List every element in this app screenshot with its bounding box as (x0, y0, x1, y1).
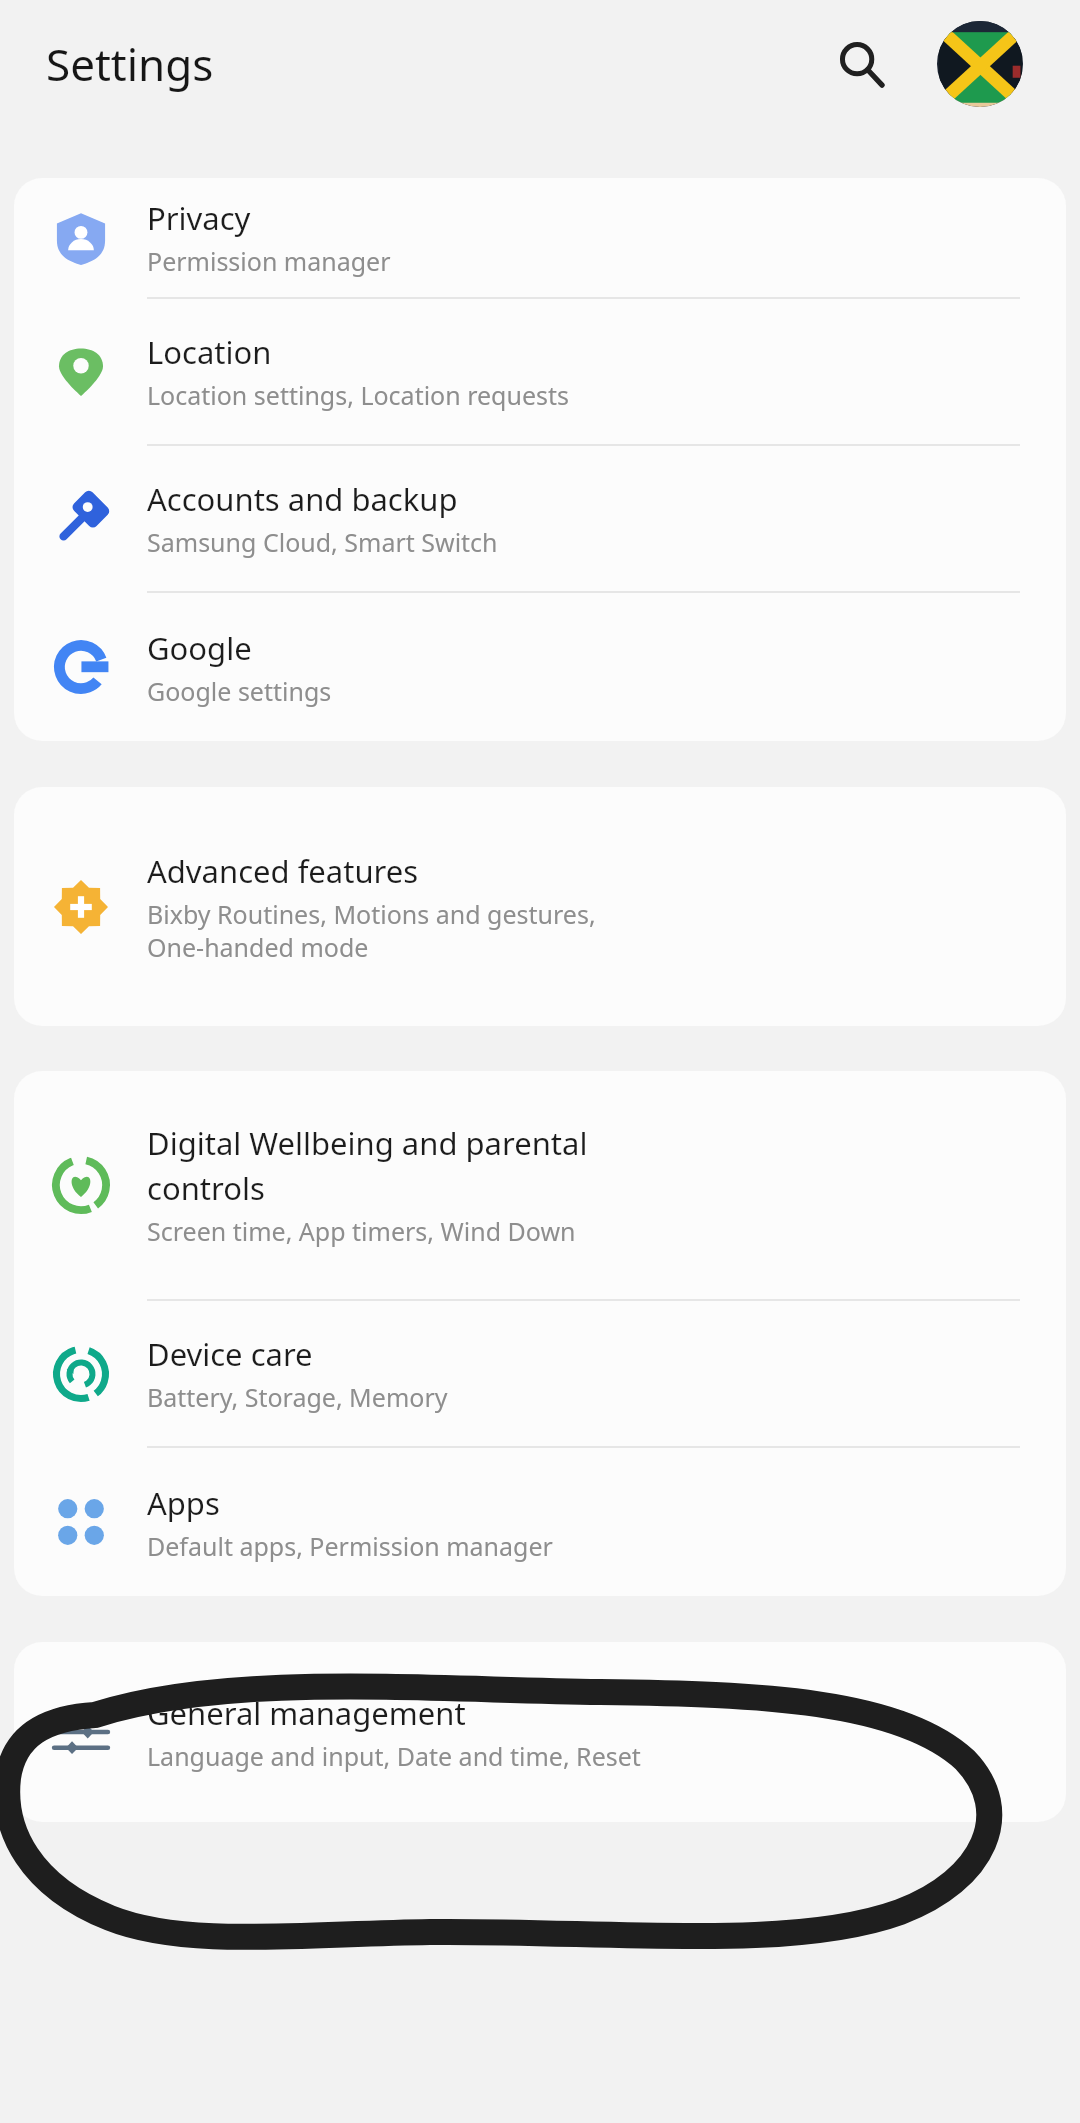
staticText: General management (147, 1692, 466, 1734)
staticText: Apps (147, 1482, 220, 1524)
staticText: Google (147, 627, 252, 669)
staticText: Device care (147, 1333, 313, 1375)
button[interactable]: Google (14, 593, 1066, 741)
staticText: Samsung Cloud, Smart Switch (147, 525, 498, 559)
staticText: Language and input, Date and time, Reset (147, 1739, 641, 1773)
staticText: Default apps, Permission manager (147, 1529, 553, 1563)
staticText: Accounts and backup (147, 478, 458, 520)
button[interactable]: Accounts and backup (14, 446, 1066, 591)
button[interactable]: General management (14, 1642, 1066, 1822)
staticText: Screen time, App timers, Wind Down (147, 1214, 576, 1248)
button[interactable]: Search (818, 22, 902, 106)
staticText: Digital Wellbeing and parental controls (147, 1122, 588, 1209)
staticText: Advanced features (147, 850, 419, 892)
button[interactable]: Advanced features (14, 787, 1066, 1026)
staticText: Location settings, Location requests (147, 378, 570, 412)
staticText: Settings (46, 34, 214, 94)
staticText: Google settings (147, 674, 332, 708)
button[interactable]: Account profile (936, 20, 1024, 108)
staticText: Privacy (147, 197, 251, 239)
staticText: Location (147, 331, 272, 373)
button[interactable]: Digital Wellbeing and parental controls (14, 1071, 1066, 1299)
button[interactable]: Apps (14, 1448, 1066, 1596)
button[interactable]: Device care (14, 1301, 1066, 1446)
staticText: Battery, Storage, Memory (147, 1380, 448, 1414)
button[interactable]: Location (14, 299, 1066, 444)
button[interactable]: Privacy (14, 178, 1066, 297)
staticText: Bixby Routines, Motions and gestures, On… (147, 897, 596, 964)
staticText: Permission manager (147, 244, 391, 278)
